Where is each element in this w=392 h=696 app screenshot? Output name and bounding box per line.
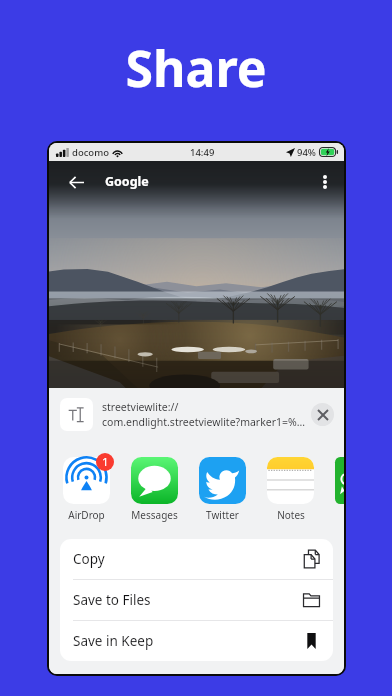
button[interactable]: Back (63, 169, 89, 195)
button[interactable]: Copy (60, 539, 333, 579)
button[interactable]: 1 (63, 457, 110, 522)
button[interactable]: WhatsApp (335, 457, 344, 504)
staticText: Save in Keep (73, 632, 154, 650)
staticText: 14:49 (190, 146, 215, 159)
button[interactable]: Save in Keep (60, 621, 333, 661)
staticText: Notes (277, 508, 305, 522)
button[interactable]: Notes (267, 457, 314, 522)
button[interactable]: Twitter (199, 457, 246, 522)
staticText: Google (105, 173, 149, 190)
button[interactable]: More options (314, 171, 336, 193)
staticText: docomo (72, 146, 109, 159)
staticText: Copy (73, 550, 105, 568)
staticText: AirDrop (68, 508, 105, 522)
button[interactable]: Close (311, 403, 334, 426)
staticText: Share (125, 34, 267, 102)
button[interactable]: Save to Files (60, 580, 333, 620)
staticText: Save to Files (73, 591, 151, 609)
staticText: 94% (297, 146, 316, 159)
staticText: Messages (131, 508, 178, 522)
button[interactable]: Messages (131, 457, 178, 522)
staticText: com.endlight.streetviewlite?marker1=%… (102, 415, 306, 429)
staticText: streetviewlite:// (102, 400, 179, 414)
staticText: 1 (102, 454, 109, 470)
staticText: Twitter (206, 508, 239, 522)
